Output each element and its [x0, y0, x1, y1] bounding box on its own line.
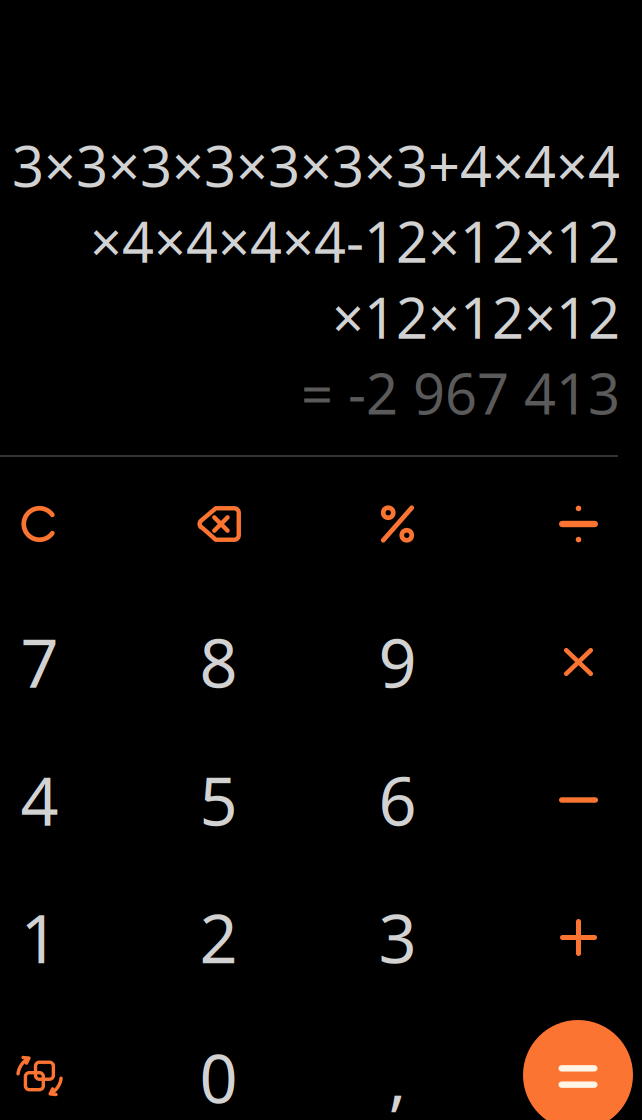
- staticText: ×12×12×12: [332, 280, 620, 354]
- staticText: ,: [388, 1033, 406, 1120]
- staticText: 3×3×3×3×3×3×3+4×4×4: [12, 128, 620, 202]
- staticText: 4: [20, 756, 58, 844]
- button[interactable]: 3: [308, 868, 487, 1006]
- staticText: 1: [20, 893, 58, 982]
- button[interactable]: Delete: [129, 455, 308, 593]
- button[interactable]: 2: [129, 868, 308, 1006]
- button[interactable]: Equals: [488, 1006, 642, 1120]
- button[interactable]: 4: [0, 731, 129, 869]
- staticText: 9: [378, 618, 416, 706]
- button[interactable]: Minus: [489, 731, 642, 869]
- button[interactable]: 1: [0, 868, 129, 1006]
- staticText: 3: [378, 893, 416, 982]
- staticText: ×4×4×4×4-12×12×12: [90, 204, 620, 278]
- staticText: 2: [199, 893, 237, 982]
- button[interactable]: 0: [129, 1008, 308, 1120]
- button[interactable]: 6: [308, 731, 487, 869]
- button[interactable]: Divide: [489, 455, 642, 593]
- staticText: = -2 967 413: [301, 356, 620, 430]
- staticText: 0: [199, 1033, 237, 1120]
- button[interactable]: Multiply: [489, 593, 642, 731]
- button[interactable]: Plus: [489, 868, 642, 1006]
- button[interactable]: 7: [0, 593, 129, 731]
- button[interactable]: 5: [129, 731, 308, 869]
- button[interactable]: 9: [308, 593, 487, 731]
- staticText: 6: [378, 756, 416, 844]
- staticText: 5: [199, 756, 237, 844]
- button[interactable]: 8: [129, 593, 308, 731]
- staticText: 7: [20, 618, 58, 706]
- button[interactable]: Convert: [0, 1007, 129, 1120]
- button[interactable]: ,: [308, 1008, 487, 1120]
- button[interactable]: Percent: [308, 455, 487, 593]
- staticText: 8: [199, 618, 237, 706]
- button[interactable]: Clear: [0, 455, 129, 593]
